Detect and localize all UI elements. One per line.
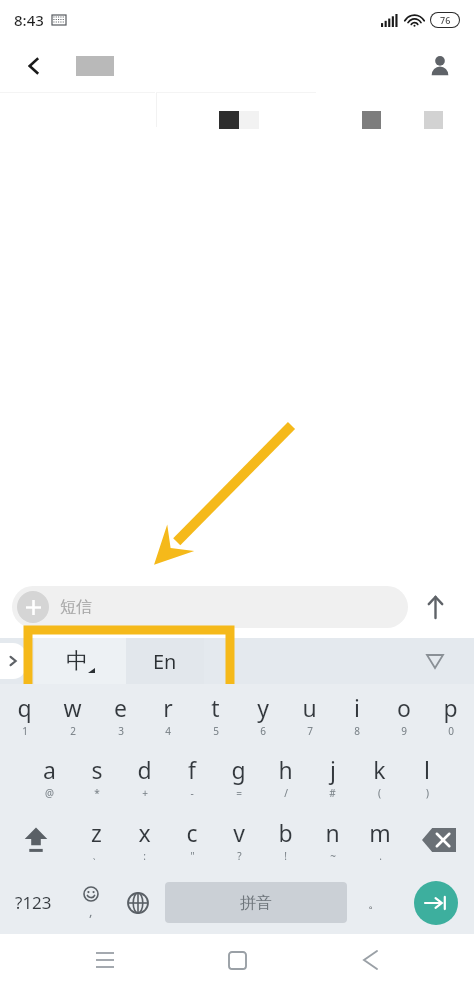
button[interactable]: u (286, 684, 333, 746)
button[interactable]: h (262, 746, 309, 808)
button[interactable]: t (192, 684, 239, 746)
staticText: 5 (213, 724, 219, 738)
staticText: h (278, 754, 293, 785)
staticText: v (233, 817, 245, 848)
staticText: . (379, 849, 382, 863)
staticText: 4 (165, 724, 171, 738)
staticText: o (397, 692, 411, 723)
button[interactable]: i (333, 684, 380, 746)
button[interactable]: Backspace (403, 808, 474, 871)
button[interactable]: q (0, 684, 48, 746)
staticText: g (231, 754, 246, 785)
staticText: ! (284, 849, 287, 863)
staticText: 8 (354, 724, 360, 738)
button[interactable]: d (121, 746, 168, 808)
button[interactable]: s (73, 746, 121, 808)
staticText: c (186, 817, 198, 848)
button[interactable]: r (144, 684, 192, 746)
button[interactable]: Back (14, 46, 54, 86)
button[interactable]: Back (342, 934, 398, 986)
staticText: + (142, 786, 148, 800)
staticText: a (43, 754, 56, 785)
button[interactable]: 中 (34, 638, 126, 684)
staticText: x (138, 817, 151, 848)
staticText: @ (45, 786, 54, 800)
button[interactable]: j (309, 746, 356, 808)
staticText: En (153, 648, 177, 675)
staticText: d (137, 754, 152, 785)
button[interactable]: f (168, 746, 215, 808)
button[interactable]: k (356, 746, 403, 808)
button[interactable]: w (48, 684, 96, 746)
staticText: l (424, 754, 430, 785)
button[interactable]: Home (209, 934, 265, 986)
staticText: n (325, 817, 340, 848)
staticText: p (443, 692, 458, 723)
staticText: j (330, 754, 336, 785)
button[interactable]: Send (408, 580, 462, 634)
staticText: / (284, 786, 288, 800)
button[interactable]: y (239, 684, 286, 746)
staticText: 8:43 (14, 10, 44, 30)
button[interactable]: Recent apps (77, 934, 133, 986)
staticText: - (190, 786, 194, 800)
button[interactable]: c (168, 808, 215, 871)
button[interactable]: Emoji (67, 871, 114, 934)
button[interactable]: Hide keyboard (418, 644, 452, 678)
staticText: 1 (22, 724, 28, 738)
staticText: f (188, 754, 196, 785)
staticText: k (373, 754, 386, 785)
staticText: r (163, 692, 173, 723)
button[interactable]: ?123 (0, 871, 67, 934)
staticText: ( (378, 786, 381, 800)
button[interactable]: Enter (414, 881, 458, 925)
button[interactable]: a (25, 746, 73, 808)
staticText: = (236, 786, 242, 800)
button[interactable]: Profile (420, 46, 460, 86)
button[interactable]: 。 (351, 871, 398, 934)
button[interactable]: n (309, 808, 356, 871)
button[interactable]: 拼音 (165, 882, 347, 923)
button[interactable]: En (126, 638, 204, 684)
staticText: # (329, 786, 336, 800)
button[interactable]: 短信 (12, 586, 408, 628)
staticText: 3 (118, 724, 124, 738)
staticText: q (17, 692, 32, 723)
staticText: ?123 (15, 891, 52, 914)
button[interactable]: e (96, 684, 144, 746)
staticText: i (354, 692, 360, 723)
button[interactable]: v (215, 808, 262, 871)
button[interactable]: Change language (114, 871, 161, 934)
staticText: 2 (70, 724, 76, 738)
button[interactable]: x (120, 808, 168, 871)
staticText: : (143, 849, 146, 863)
staticText: " (190, 849, 195, 863)
button[interactable]: l (403, 746, 450, 808)
staticText: e (114, 692, 127, 723)
staticText: 0 (448, 724, 454, 738)
staticText: y (257, 692, 269, 723)
button[interactable]: g (215, 746, 262, 808)
staticText: t (211, 692, 220, 723)
staticText: ) (426, 786, 429, 800)
button[interactable]: m (356, 808, 403, 871)
button[interactable]: Expand toolbar (0, 643, 26, 679)
staticText: b (278, 817, 293, 848)
staticText: s (91, 754, 103, 785)
staticText: 9 (401, 724, 407, 738)
staticText: ~ (330, 849, 336, 863)
button[interactable]: z (72, 808, 120, 871)
staticText: m (369, 817, 391, 848)
button[interactable]: Shift (0, 808, 72, 871)
staticText: 中 (66, 647, 88, 675)
button[interactable]: o (380, 684, 427, 746)
staticText: 拼音 (240, 893, 272, 913)
staticText: 7 (307, 724, 313, 738)
staticText: 76 (440, 14, 451, 26)
button[interactable]: b (262, 808, 309, 871)
staticText: , (89, 902, 93, 920)
staticText: 。 (368, 895, 381, 911)
staticText: z (91, 817, 102, 848)
staticText: 、 (92, 849, 102, 862)
button[interactable]: p (427, 684, 474, 746)
